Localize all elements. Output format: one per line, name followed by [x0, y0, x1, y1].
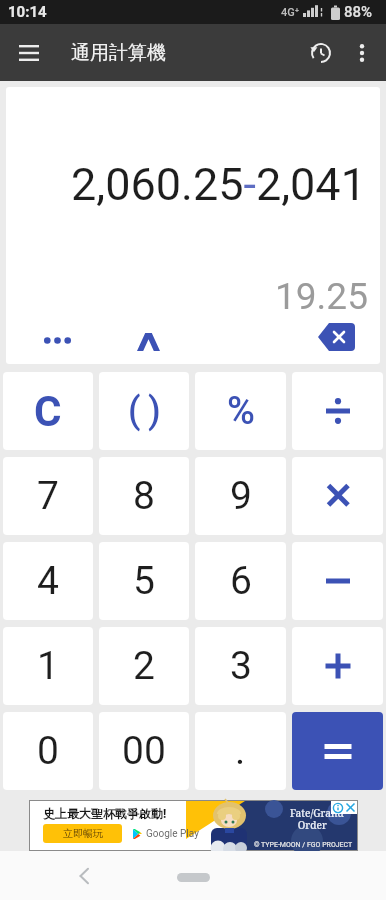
staticText: )	[148, 390, 161, 432]
button[interactable]	[292, 542, 383, 620]
button[interactable]: Fate/Grand Order	[30, 801, 357, 850]
staticText: C	[34, 387, 62, 436]
staticText: 9	[230, 473, 252, 519]
staticText: %	[227, 389, 255, 434]
button[interactable]	[126, 328, 170, 356]
button[interactable]	[340, 31, 384, 75]
staticText: 4G⁺	[281, 6, 300, 19]
button[interactable]: C	[3, 372, 93, 450]
staticText: 88%	[344, 3, 373, 21]
staticText: 8	[133, 473, 155, 519]
staticText: 史上最大聖杯戰爭啟動!	[43, 805, 167, 821]
button[interactable]: 4	[3, 542, 93, 620]
staticText: 2,060.25-2,041	[71, 158, 366, 211]
button[interactable]: 6	[195, 542, 286, 620]
button[interactable]	[331, 801, 344, 814]
button[interactable]	[66, 858, 102, 894]
staticText: 3	[230, 643, 252, 689]
button[interactable]	[314, 322, 358, 352]
button[interactable]: 立即暢玩	[43, 824, 122, 843]
staticText: .	[235, 728, 246, 774]
button[interactable]: %	[195, 372, 286, 450]
button[interactable]	[292, 712, 383, 790]
staticText: 00	[122, 728, 166, 774]
button[interactable]	[292, 457, 383, 535]
button[interactable]	[292, 372, 383, 450]
staticText: 2	[133, 643, 155, 689]
staticText: 5	[133, 558, 155, 604]
button[interactable]: 00	[99, 712, 189, 790]
button[interactable]: (	[99, 372, 189, 450]
staticText: Fate/Grand Order	[290, 806, 344, 832]
staticText: (	[128, 390, 141, 432]
button[interactable]	[7, 31, 51, 75]
staticText: © TYPE-MOON / FGO PROJECT	[254, 841, 353, 849]
staticText: 0	[37, 728, 59, 774]
staticText: 4	[37, 558, 59, 604]
staticText: 7	[37, 473, 59, 519]
button[interactable]: 5	[99, 542, 189, 620]
button[interactable]: 9	[195, 457, 286, 535]
button[interactable]: 1	[3, 627, 93, 705]
button[interactable]: 8	[99, 457, 189, 535]
button[interactable]	[299, 31, 343, 75]
button[interactable]: 3	[195, 627, 286, 705]
staticText: 19.25	[275, 275, 368, 318]
staticText: Google Play	[146, 828, 199, 840]
button[interactable]	[292, 627, 383, 705]
staticText: 10:14	[8, 3, 47, 21]
staticText: 通用計算機	[71, 41, 166, 65]
button[interactable]: 0	[3, 712, 93, 790]
staticText: 立即暢玩	[63, 827, 103, 840]
button[interactable]: .	[195, 712, 286, 790]
button[interactable]	[171, 865, 215, 889]
button[interactable]	[35, 326, 79, 354]
button[interactable]	[344, 801, 357, 814]
button[interactable]: 7	[3, 457, 93, 535]
staticText: 1	[37, 643, 59, 689]
staticText: 6	[230, 558, 252, 604]
button[interactable]: 2	[99, 627, 189, 705]
